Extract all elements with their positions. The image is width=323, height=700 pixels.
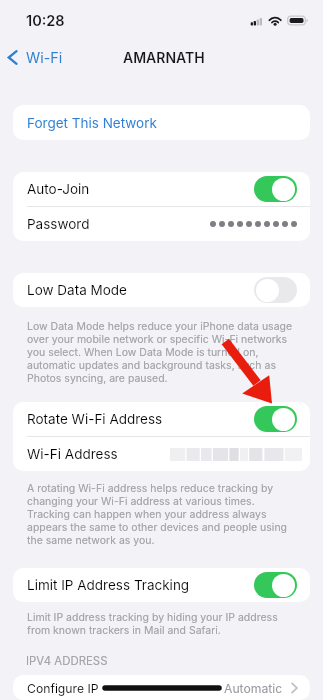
button[interactable]: On [254, 176, 297, 202]
staticText: Configure IP [27, 681, 99, 696]
staticText: AMARNATH [123, 49, 205, 66]
other: Back [8, 50, 17, 65]
button[interactable]: On [254, 406, 297, 432]
button[interactable]: Off [254, 277, 297, 303]
other: Configure IP [291, 682, 298, 694]
staticText: Rotate Wi-Fi Address [27, 411, 163, 427]
staticText: Limit IP Address Tracking [27, 577, 190, 593]
staticText: A rotating Wi-Fi address helps reduce tr… [27, 482, 296, 547]
staticText: 10:28 [26, 12, 65, 30]
button[interactable]: Low Data Mode [13, 273, 310, 307]
button[interactable]: Rotate Wi-Fi Address [13, 402, 310, 436]
button[interactable]: Limit IP Address Tracking [13, 568, 310, 602]
staticText: Password [27, 216, 90, 232]
button[interactable]: Configure IP [13, 675, 310, 700]
staticText: Wi-Fi [26, 49, 63, 66]
button[interactable]: Password [13, 207, 310, 241]
button[interactable]: Forget This Network [13, 105, 310, 140]
staticText: Limit IP address tracking by hiding your… [27, 611, 296, 637]
staticText: Low Data Mode helps reduce your iPhone d… [27, 320, 296, 385]
button[interactable]: Wi-Fi Address [13, 437, 310, 471]
staticText: Automatic [224, 681, 283, 696]
staticText: IPV4 ADDRESS [26, 654, 108, 668]
button[interactable]: Auto-Join [13, 172, 310, 206]
button[interactable]: On [254, 572, 297, 598]
staticText: Wi-Fi Address [27, 446, 118, 462]
staticText: Auto-Join [27, 181, 90, 197]
button[interactable]: Back [0, 43, 63, 71]
staticText: Forget This Network [27, 115, 157, 131]
staticText: Low Data Mode [27, 282, 127, 298]
